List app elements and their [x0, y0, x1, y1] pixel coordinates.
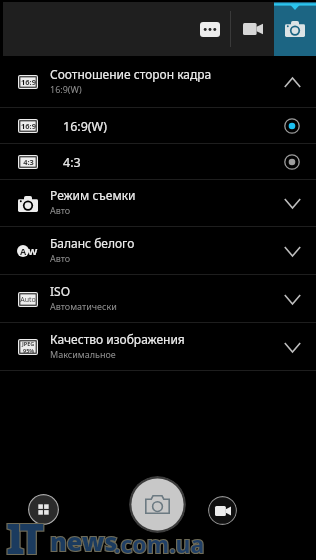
button[interactable]: Gallery grid — [28, 494, 59, 525]
button[interactable]: Режим съемки — [0, 180, 316, 227]
button[interactable]: Photo mode — [274, 2, 316, 56]
staticText: Авто — [50, 252, 71, 264]
staticText: Баланс белого — [50, 235, 135, 251]
staticText: ISO — [50, 283, 71, 299]
staticText: JPEG — [22, 340, 35, 347]
staticText: 4:3 — [63, 154, 81, 171]
staticText: 16:9(W) — [50, 83, 82, 95]
button[interactable]: A — [0, 227, 316, 275]
staticText: Авто — [50, 204, 71, 216]
staticText: Соотношение сторон кадра — [50, 66, 212, 82]
staticText: .com.ua — [114, 528, 205, 559]
staticText: T — [19, 508, 45, 560]
button[interactable]: Record video — [208, 496, 237, 525]
staticText: I — [6, 508, 25, 560]
staticText: 4:3 — [23, 157, 34, 167]
staticText: A — [20, 245, 27, 257]
staticText: 16:9 — [21, 121, 36, 131]
button[interactable]: Video mode — [232, 2, 274, 56]
staticText: Auto — [20, 295, 36, 305]
button[interactable]: 16:9 — [0, 56, 316, 108]
button[interactable]: JPEG — [0, 323, 316, 371]
button[interactable]: Shutter — [129, 476, 186, 533]
staticText: 16:9 — [21, 77, 36, 87]
button[interactable]: Auto — [0, 275, 316, 323]
staticText: 95% — [23, 347, 35, 354]
staticText: W — [28, 245, 38, 258]
staticText: Максимальное — [50, 348, 116, 360]
staticText: I — [6, 508, 25, 560]
staticText: .com.ua — [114, 528, 205, 559]
staticText: news — [50, 524, 118, 558]
button[interactable]: More options — [189, 2, 231, 56]
staticText: Режим съемки — [50, 187, 136, 203]
staticText: Автоматически — [50, 300, 117, 312]
button[interactable]: 16:9 — [0, 108, 316, 144]
button[interactable]: 4:3 — [0, 144, 316, 180]
staticText: 16:9(W) — [63, 118, 107, 135]
staticText: news — [50, 524, 118, 558]
staticText: Качество изображения — [50, 331, 185, 347]
staticText: T — [19, 508, 45, 560]
